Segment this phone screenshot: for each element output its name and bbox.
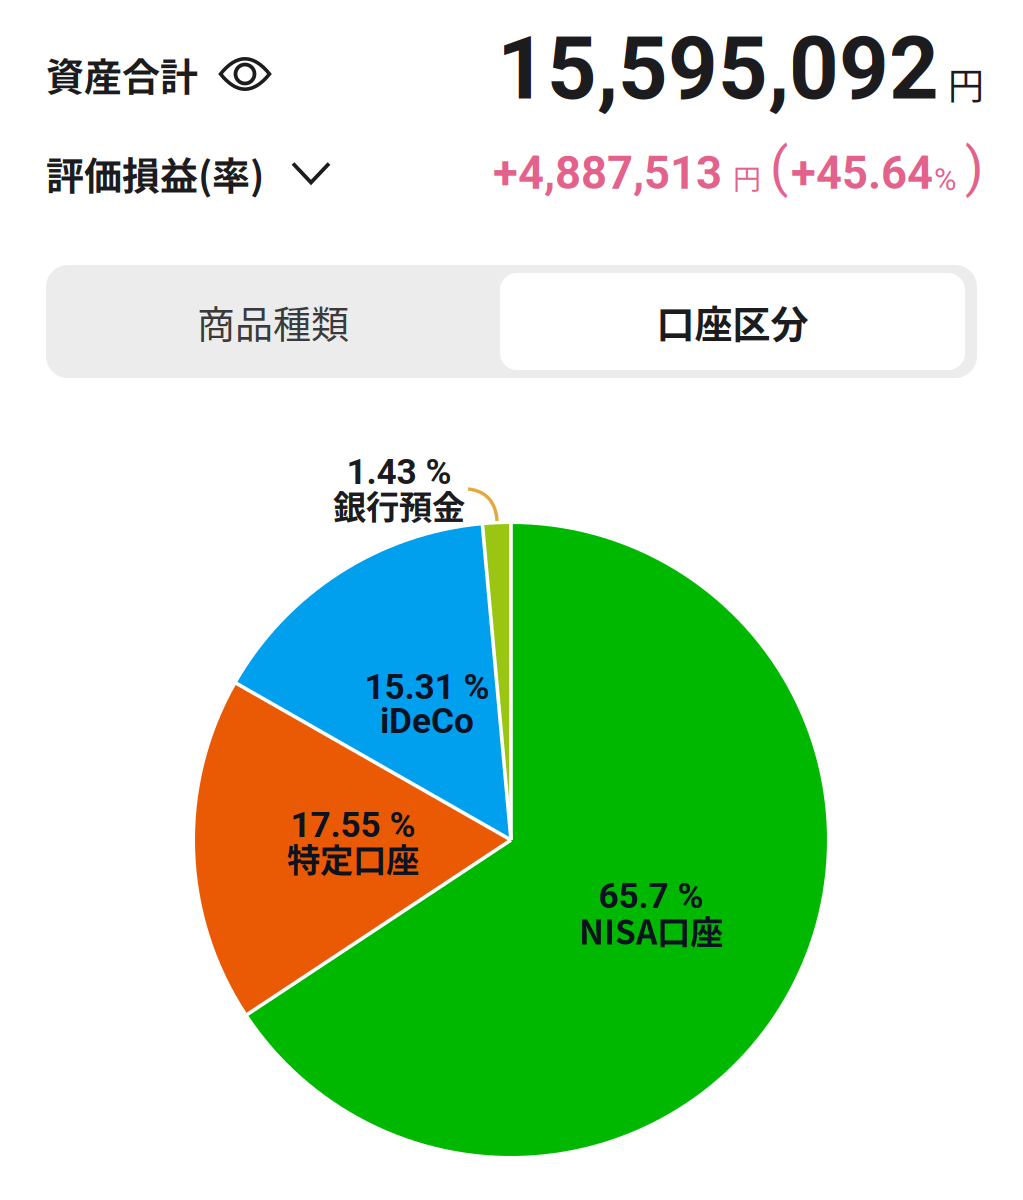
staticText: +4,887,513 bbox=[493, 147, 722, 200]
staticText: 資産合計 bbox=[46, 46, 198, 101]
staticText: 15,595,092 bbox=[497, 18, 939, 120]
button[interactable]: 評価損益(率) bbox=[46, 140, 376, 206]
staticText: 銀行預金 bbox=[333, 481, 465, 529]
staticText: +45.64 bbox=[791, 147, 933, 200]
staticText: 口座区分 bbox=[656, 294, 808, 349]
staticText: 特定口座 bbox=[287, 834, 419, 882]
staticText: 15.31 % bbox=[364, 666, 489, 708]
staticText: ) bbox=[965, 136, 984, 199]
staticText: 17.55 % bbox=[290, 804, 415, 846]
staticText: % bbox=[934, 162, 956, 198]
staticText: 65.7 % bbox=[598, 875, 703, 917]
staticText: 評価損益(率) bbox=[46, 145, 264, 200]
staticText: 円 bbox=[948, 58, 984, 110]
staticText: ( bbox=[770, 136, 788, 199]
button[interactable]: 口座区分 bbox=[500, 273, 965, 370]
staticText: 商品種類 bbox=[197, 294, 349, 349]
button[interactable]: 商品種類 bbox=[46, 265, 500, 378]
staticText: 1.43 % bbox=[346, 451, 451, 493]
staticText: iDeCo bbox=[380, 700, 474, 742]
button[interactable]: 資産合計 bbox=[46, 38, 316, 110]
staticText: 円 bbox=[733, 157, 761, 198]
staticText: NISA口座 bbox=[579, 906, 723, 954]
